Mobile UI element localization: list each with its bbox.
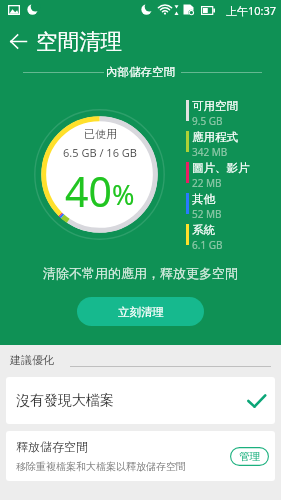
staticText: 342 MB [192, 145, 228, 159]
staticText: 空間清理 [36, 28, 122, 55]
staticText: % [112, 176, 135, 213]
button[interactable]: 沒有發現大檔案 [6, 377, 275, 424]
staticText: 沒有發現大檔案 [16, 392, 114, 410]
button[interactable]: 釋放儲存空間 [6, 431, 275, 481]
staticText: 應用程式 [192, 130, 238, 144]
staticText: 清除不常用的應用，釋放更多空間 [0, 265, 281, 281]
staticText: 內部儲存空間 [106, 65, 175, 79]
button[interactable]: 管理 [230, 447, 269, 466]
staticText: 釋放儲存空間 [16, 439, 88, 454]
staticText: 52 MB [192, 207, 222, 221]
staticText: 其他 [192, 192, 215, 206]
staticText: 6.5 GB / 16 GB [63, 145, 137, 160]
staticText: 立刻清理 [118, 305, 164, 319]
staticText: 已使用 [84, 127, 117, 141]
staticText: 管理 [239, 450, 260, 463]
staticText: 40 [65, 163, 112, 219]
staticText: 6.1 GB [192, 238, 223, 252]
button[interactable]: Back [0, 23, 36, 59]
staticText: 系統 [192, 223, 215, 237]
staticText: 移除重複檔案和大檔案以釋放儲存空間 [16, 460, 186, 473]
staticText: 圖片、影片 [192, 161, 250, 175]
staticText: 可用空間 [192, 99, 238, 113]
staticText: 9.5 GB [192, 114, 223, 128]
button[interactable]: 立刻清理 [77, 297, 204, 326]
staticText: 上午10:37 [226, 3, 277, 18]
staticText: 22 MB [192, 176, 222, 190]
staticText: 建議優化 [10, 353, 54, 367]
